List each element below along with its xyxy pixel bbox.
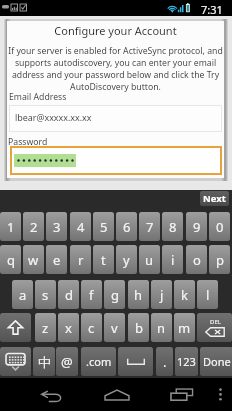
button[interactable]: .	[156, 347, 173, 376]
button[interactable]: Recent apps	[166, 384, 198, 404]
staticText: 1	[7, 218, 15, 236]
staticText: .	[163, 353, 167, 371]
button[interactable]: 8	[162, 212, 183, 241]
button[interactable]: t	[93, 245, 114, 274]
button[interactable]: Back	[36, 386, 67, 406]
button[interactable]: y	[116, 245, 137, 274]
button[interactable]: h	[128, 280, 149, 309]
staticText: If your server is enabled for ActiveSync…	[7, 45, 224, 93]
staticText: l	[206, 286, 210, 304]
button[interactable]: Next	[200, 191, 229, 206]
staticText: 2	[30, 218, 38, 236]
button[interactable]: 0	[209, 212, 230, 241]
button[interactable]: 9	[186, 212, 207, 241]
button[interactable]: k	[174, 280, 195, 309]
staticText: d	[65, 286, 73, 304]
staticText: .com	[86, 354, 112, 369]
staticText: k	[181, 286, 188, 304]
staticText: 9	[193, 218, 201, 236]
staticText: Password	[8, 136, 48, 148]
staticText: 8	[169, 218, 177, 236]
button[interactable]: a	[12, 280, 33, 309]
button[interactable]: 7	[139, 212, 160, 241]
button[interactable]: Space	[118, 347, 153, 376]
staticText: e	[53, 251, 61, 269]
button[interactable]: 5	[93, 212, 114, 241]
button[interactable]: e	[46, 245, 67, 274]
staticText: q	[7, 251, 15, 269]
button[interactable]: Home	[100, 385, 134, 405]
staticText: b	[135, 319, 143, 337]
button[interactable]: More options	[212, 384, 228, 404]
button[interactable]: b	[128, 313, 149, 342]
staticText: w	[28, 251, 39, 269]
button[interactable]: o	[186, 245, 207, 274]
staticText: 中	[38, 354, 51, 370]
staticText: o	[193, 251, 201, 269]
staticText: Done	[203, 354, 231, 369]
staticText: r	[78, 251, 84, 269]
button[interactable]: s	[35, 280, 56, 309]
staticText: u	[145, 251, 154, 269]
button[interactable]: x	[58, 313, 79, 342]
staticText: a	[19, 286, 27, 304]
staticText: 0	[216, 218, 224, 236]
staticText: Configure your Account	[7, 23, 224, 38]
staticText: 123	[177, 354, 196, 369]
staticText: t	[101, 251, 106, 269]
staticText: g	[111, 286, 119, 304]
staticText: p	[216, 251, 224, 269]
button[interactable]: 6	[116, 212, 137, 241]
staticText: h	[134, 286, 143, 304]
button[interactable]: 123	[175, 347, 198, 376]
button[interactable]: v	[104, 313, 125, 342]
staticText: z	[42, 319, 49, 337]
button[interactable]: Switch keyboard	[0, 347, 31, 376]
staticText: 5	[100, 218, 108, 236]
button[interactable]: 1	[0, 212, 21, 241]
button[interactable]: lbear@xxxxx.xx.xx	[9, 105, 222, 132]
staticText: 3	[53, 218, 61, 236]
button[interactable]: m	[174, 313, 195, 342]
button[interactable]: i	[162, 245, 183, 274]
staticText: f	[89, 286, 94, 304]
staticText: i	[171, 251, 175, 269]
button[interactable]: w	[23, 245, 44, 274]
button[interactable]: z	[35, 313, 56, 342]
staticText: 4	[77, 218, 85, 236]
button[interactable]: 2	[23, 212, 44, 241]
button[interactable]: Delete	[197, 313, 232, 342]
button[interactable]: q	[0, 245, 21, 274]
staticText: DEL	[210, 318, 221, 326]
staticText: s	[42, 286, 49, 304]
button[interactable]: d	[58, 280, 79, 309]
staticText: m	[178, 319, 191, 337]
staticText: Email Address	[9, 91, 67, 103]
button[interactable]: 中	[33, 347, 55, 376]
button[interactable]: @	[56, 347, 78, 376]
button[interactable]: u	[139, 245, 160, 274]
button[interactable]: p	[209, 245, 230, 274]
staticText: y	[123, 251, 130, 269]
button[interactable]: Done	[200, 347, 232, 376]
button[interactable]: l	[197, 280, 218, 309]
button[interactable]: 3	[46, 212, 67, 241]
button[interactable]	[10, 146, 222, 175]
button[interactable]: n	[151, 313, 172, 342]
button[interactable]: .com	[81, 347, 116, 376]
staticText: x	[65, 319, 72, 337]
staticText: j	[160, 286, 164, 304]
button[interactable]: j	[151, 280, 172, 309]
button[interactable]: 4	[70, 212, 91, 241]
staticText: Next	[203, 192, 226, 205]
staticText: 7:31	[201, 2, 223, 17]
staticText: v	[111, 319, 118, 337]
staticText: 6	[123, 218, 131, 236]
button[interactable]: c	[81, 313, 102, 342]
button[interactable]: g	[104, 280, 125, 309]
button[interactable]: r	[70, 245, 91, 274]
staticText: n	[157, 319, 166, 337]
button[interactable]: f	[81, 280, 102, 309]
button[interactable]: Shift	[0, 313, 31, 342]
staticText: 7	[146, 218, 154, 236]
